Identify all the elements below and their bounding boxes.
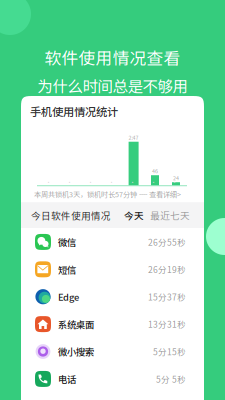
button[interactable]: 微信 xyxy=(21,228,204,256)
staticText: · xyxy=(171,178,177,187)
button[interactable]: Edge xyxy=(21,283,204,310)
staticText: · xyxy=(150,178,156,187)
button[interactable]: 最近七天 xyxy=(144,208,190,222)
staticText: 本周共锁机3天，锁机时长57分钟 xyxy=(34,189,137,199)
staticText: 最近七天 xyxy=(150,208,190,222)
staticText: 微小搜索 xyxy=(58,345,94,358)
staticText: 5分15秒 xyxy=(153,345,186,358)
button[interactable]: 短信 xyxy=(21,256,204,283)
button[interactable]: 查看详细> xyxy=(149,189,181,199)
staticText: · xyxy=(87,178,93,187)
staticText: 微信 xyxy=(58,235,76,249)
staticText: ---- xyxy=(137,189,149,199)
staticText: 2:47 xyxy=(129,133,139,141)
staticText: · xyxy=(45,178,51,187)
staticText: · xyxy=(108,178,114,187)
staticText: · xyxy=(66,178,72,187)
staticText: 系统桌面 xyxy=(58,317,94,331)
staticText: 软件使用情况查看 xyxy=(44,45,180,69)
staticText: Edge xyxy=(58,290,79,303)
button[interactable]: 系统桌面 xyxy=(21,310,204,338)
staticText: 46 xyxy=(152,167,158,175)
staticText: 查看详细> xyxy=(149,189,181,199)
staticText: 为什么时间总是不够用 xyxy=(37,74,187,97)
staticText: 电话 xyxy=(58,372,76,386)
staticText: 5分 5秒 xyxy=(156,373,186,385)
staticText: 15分37秒 xyxy=(148,290,186,303)
staticText: 今日软件使用情况 xyxy=(31,208,111,222)
staticText: 手机使用情况统计 xyxy=(30,103,118,119)
button[interactable]: 微小搜索 xyxy=(21,338,204,365)
staticText: 今天 xyxy=(124,208,144,222)
staticText: 26分19秒 xyxy=(148,263,186,275)
staticText: 13分31秒 xyxy=(148,318,186,330)
button[interactable]: 电话 xyxy=(21,365,204,393)
button[interactable]: 今天 xyxy=(124,208,144,222)
staticText: · xyxy=(129,178,135,187)
staticText: 短信 xyxy=(58,263,76,276)
staticText: 26分55秒 xyxy=(148,236,186,248)
staticText: 24 xyxy=(173,174,179,182)
